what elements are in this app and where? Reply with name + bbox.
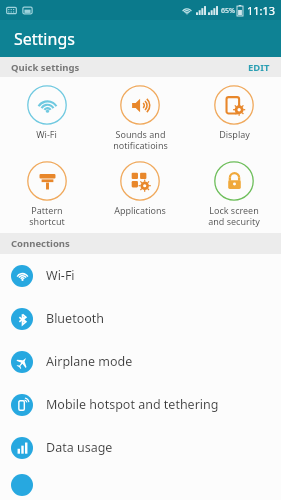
- staticText: Wi-Fi: [46, 267, 75, 284]
- button[interactable]: [0, 469, 281, 500]
- button[interactable]: Wi-Fi: [0, 83, 93, 142]
- staticText: Connections: [11, 237, 70, 250]
- button[interactable]: Wi-Fi: [0, 254, 281, 297]
- button[interactable]: Bluetooth: [0, 297, 281, 340]
- staticText: Quick settings: [11, 61, 80, 74]
- staticText: Applications: [114, 204, 166, 216]
- staticText: Settings: [14, 28, 75, 50]
- staticText: Wi-Fi: [36, 128, 57, 140]
- staticText: Sounds and notificatioins: [113, 128, 168, 151]
- button[interactable]: Applications: [93, 159, 187, 218]
- button[interactable]: Pattern shortcut: [0, 159, 93, 229]
- staticText: Data usage: [46, 439, 113, 456]
- button[interactable]: Sounds and notificatioins: [93, 83, 187, 153]
- staticText: Airplane mode: [46, 353, 133, 370]
- button[interactable]: Display: [187, 83, 281, 142]
- button[interactable]: Lock screen and security: [187, 159, 281, 229]
- staticText: EDIT: [248, 61, 270, 74]
- staticText: Pattern shortcut: [29, 204, 65, 227]
- staticText: Bluetooth: [46, 310, 105, 327]
- staticText: 65%: [221, 6, 235, 16]
- button[interactable]: Airplane mode: [0, 340, 281, 383]
- staticText: Mobile hotspot and tethering: [46, 396, 219, 413]
- button[interactable]: EDIT: [237, 58, 281, 77]
- button[interactable]: Mobile hotspot and tethering: [0, 383, 281, 426]
- staticText: Display: [219, 128, 250, 140]
- staticText: Lock screen and security: [208, 204, 260, 227]
- staticText: 11:13: [247, 3, 276, 18]
- button[interactable]: Data usage: [0, 426, 281, 469]
